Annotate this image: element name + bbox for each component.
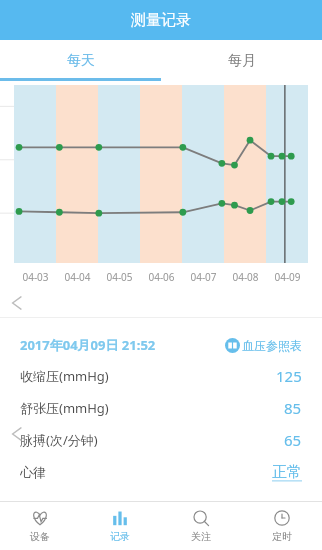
button[interactable]: 收缩压(mmHg)	[0, 360, 322, 392]
staticText: 04-03	[22, 270, 49, 284]
staticText: 收缩压(mmHg)	[20, 367, 109, 385]
staticText: 设备	[30, 530, 50, 543]
staticText: 04-07	[190, 270, 217, 284]
staticText: 125	[276, 366, 302, 386]
staticText: 正常	[272, 463, 302, 482]
staticText: 舒张压(mmHg)	[20, 399, 109, 417]
staticText: 04-06	[148, 270, 175, 284]
staticText: 定时	[272, 530, 292, 543]
button[interactable]: 每天	[0, 40, 161, 81]
staticText: 2017年04月09日 21:52	[20, 336, 156, 354]
staticText: 血压参照表	[242, 338, 302, 353]
staticText: 记录	[110, 530, 130, 543]
staticText: 脉搏(次/分钟)	[20, 431, 98, 449]
button[interactable]: 心律	[0, 456, 322, 488]
button[interactable]: 血压参照表	[225, 338, 302, 353]
staticText: 04-08	[232, 270, 259, 284]
staticText: 04-04	[64, 270, 91, 284]
staticText: 测量记录	[131, 11, 191, 30]
button[interactable]: 脉搏(次/分钟)	[0, 424, 322, 456]
staticText: 04-09	[274, 270, 301, 284]
staticText: 85	[284, 398, 302, 418]
button[interactable]: 设备	[0, 502, 80, 550]
button[interactable]: 舒张压(mmHg)	[0, 392, 322, 424]
button[interactable]: 关注	[160, 502, 241, 550]
staticText: 每天	[67, 52, 95, 70]
staticText: 04-05	[106, 270, 133, 284]
button[interactable]: 每月	[161, 40, 322, 81]
button[interactable]: 记录	[80, 502, 160, 550]
staticText: 心律	[20, 464, 46, 480]
button[interactable]: 定时	[241, 502, 322, 550]
staticText: 关注	[191, 530, 211, 543]
button[interactable]: Previous	[6, 292, 28, 314]
staticText: 65	[284, 430, 302, 450]
button[interactable]: Previous record	[6, 423, 28, 445]
staticText: 每月	[228, 52, 256, 70]
